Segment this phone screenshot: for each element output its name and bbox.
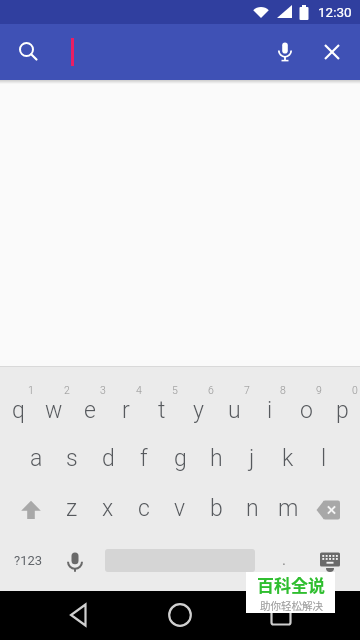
button[interactable]: k xyxy=(270,440,306,476)
button[interactable]: o xyxy=(288,392,324,428)
staticText: 6 xyxy=(208,384,214,396)
button[interactable]: m xyxy=(270,490,306,526)
button[interactable] xyxy=(156,600,204,630)
staticText: 4 xyxy=(136,384,142,396)
button[interactable] xyxy=(306,544,354,578)
staticText: i xyxy=(267,397,273,424)
button[interactable] xyxy=(260,24,310,80)
staticText: l xyxy=(321,445,327,472)
staticText: 1 xyxy=(28,384,34,396)
button[interactable]: b xyxy=(198,490,234,526)
staticText: 5 xyxy=(172,384,178,396)
button[interactable]: d xyxy=(90,440,126,476)
staticText: z xyxy=(66,495,78,522)
staticText: b xyxy=(210,495,223,522)
button[interactable]: w xyxy=(36,392,72,428)
button[interactable]: . xyxy=(270,545,298,575)
button[interactable]: t xyxy=(144,392,180,428)
staticText: c xyxy=(138,495,150,522)
staticText: 0 xyxy=(352,384,358,396)
button[interactable]: l xyxy=(306,440,342,476)
button[interactable]: i xyxy=(252,392,288,428)
button[interactable]: ?123 xyxy=(0,545,56,575)
button[interactable] xyxy=(257,600,305,630)
button[interactable]: u xyxy=(216,392,252,428)
button[interactable]: n xyxy=(234,490,270,526)
button[interactable] xyxy=(56,600,104,630)
button[interactable] xyxy=(0,24,56,80)
staticText: d xyxy=(102,445,115,472)
staticText: n xyxy=(246,495,259,522)
staticText: v xyxy=(174,495,186,522)
staticText: u xyxy=(228,397,241,424)
button[interactable]: v xyxy=(162,490,198,526)
button[interactable]: e xyxy=(72,392,108,428)
button[interactable]: y xyxy=(180,392,216,428)
button[interactable]: z xyxy=(54,490,90,526)
staticText: a xyxy=(30,445,43,472)
button[interactable] xyxy=(310,24,354,80)
button[interactable]: s xyxy=(54,440,90,476)
button[interactable]: g xyxy=(162,440,198,476)
staticText: 12:30 xyxy=(318,4,352,20)
staticText: e xyxy=(84,397,96,424)
button[interactable]: c xyxy=(126,490,162,526)
button[interactable]: q xyxy=(0,392,36,428)
staticText: m xyxy=(278,495,299,522)
button[interactable]: x xyxy=(90,490,126,526)
button[interactable]: f xyxy=(126,440,162,476)
staticText: . xyxy=(282,551,286,569)
staticText: s xyxy=(66,445,78,472)
staticText: t xyxy=(158,397,166,424)
staticText: ?123 xyxy=(14,553,43,568)
staticText: w xyxy=(45,397,63,424)
staticText: 3 xyxy=(100,384,106,396)
staticText: k xyxy=(282,445,294,472)
button[interactable]: h xyxy=(198,440,234,476)
button[interactable]: p xyxy=(324,392,360,428)
staticText: 2 xyxy=(64,384,70,396)
staticText: j xyxy=(249,445,255,472)
button[interactable] xyxy=(304,492,352,528)
staticText: x xyxy=(102,495,114,522)
staticText: 7 xyxy=(244,384,250,396)
staticText: 百科全说 xyxy=(257,572,325,597)
staticText: h xyxy=(210,445,223,472)
button[interactable] xyxy=(8,492,54,528)
staticText: 9 xyxy=(316,384,322,396)
button[interactable]: j xyxy=(234,440,270,476)
staticText: 8 xyxy=(280,384,286,396)
staticText: o xyxy=(300,397,313,424)
button[interactable]: r xyxy=(108,392,144,428)
button[interactable] xyxy=(58,545,92,575)
staticText: q xyxy=(12,397,25,424)
staticText: p xyxy=(336,397,349,424)
staticText: g xyxy=(174,445,187,472)
button[interactable]: a xyxy=(18,440,54,476)
staticText: f xyxy=(140,445,148,472)
staticText: y xyxy=(193,397,204,424)
staticText: 助你轻松解决 xyxy=(260,598,323,613)
staticText: r xyxy=(122,397,130,424)
